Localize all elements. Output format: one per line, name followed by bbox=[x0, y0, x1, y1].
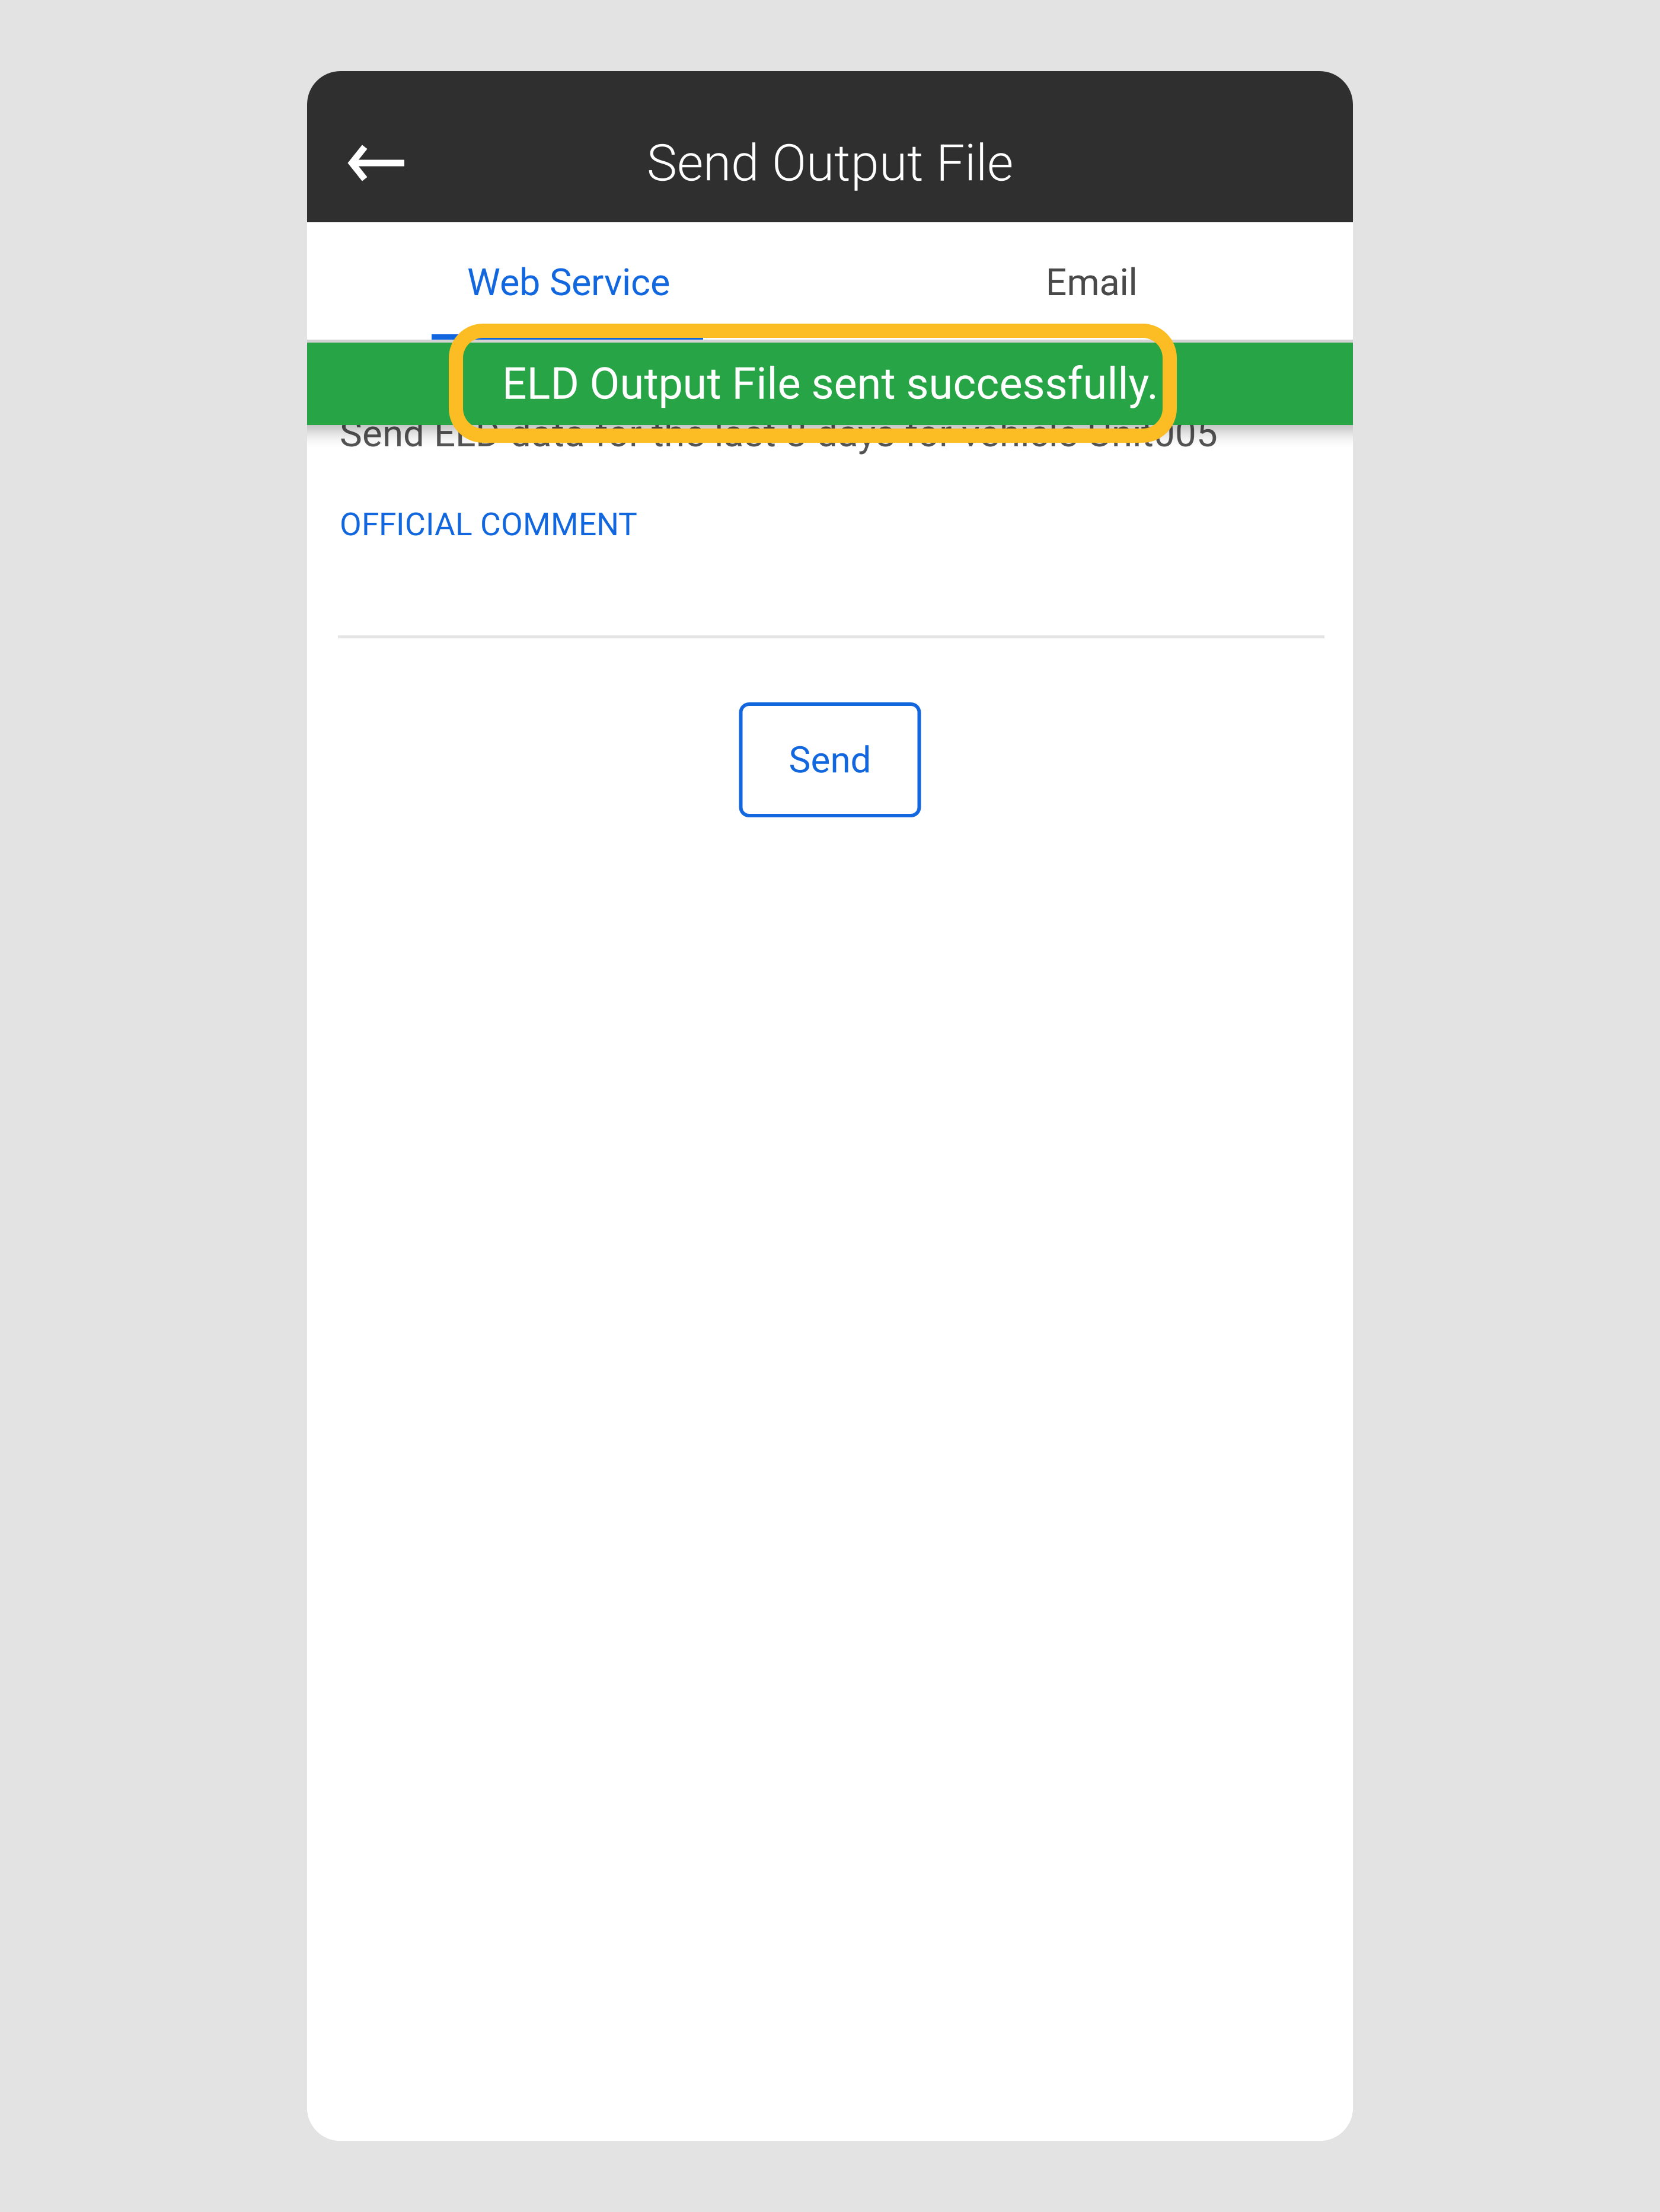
staticText: OFFICIAL COMMENT bbox=[340, 506, 637, 543]
staticText: Send ELD data for the last 8 days for ve… bbox=[340, 411, 1218, 455]
staticText: Send Output File bbox=[647, 133, 1013, 193]
staticText: Send bbox=[789, 738, 871, 781]
button[interactable]: Send bbox=[741, 704, 919, 816]
staticText: Web Service bbox=[467, 261, 670, 304]
button[interactable]: Back bbox=[307, 104, 425, 222]
staticText: Email bbox=[1046, 261, 1137, 304]
staticText: ELD Output File sent successfully. bbox=[502, 358, 1158, 409]
button[interactable]: Email bbox=[830, 222, 1353, 343]
button[interactable]: Web Service bbox=[307, 222, 830, 343]
